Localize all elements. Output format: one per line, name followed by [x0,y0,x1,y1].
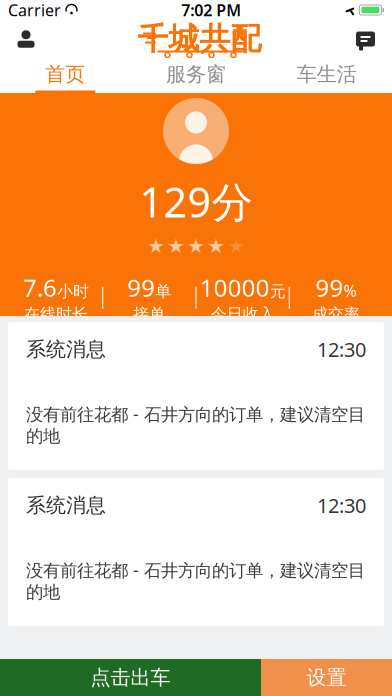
staticText: ★ [167,235,185,257]
staticText: 单 [155,282,171,301]
staticText: % [343,280,356,301]
staticText: 系统消息 [26,493,106,518]
button[interactable]: 首页 [0,58,131,93]
staticText: 成交率 [312,304,360,324]
staticText: 今日收入 [211,304,275,324]
staticText: ★ [147,235,165,257]
staticText: 129分 [139,174,252,229]
staticText: 12:30 [317,492,366,519]
staticText: ★ [187,235,205,257]
staticText: 设置 [306,665,346,690]
staticText: 首页 [45,62,85,87]
staticText: 12:30 [317,336,366,363]
staticText: 服务窗 [166,62,226,87]
staticText: 元 [270,282,286,301]
button[interactable]: 系统消息 [8,478,384,626]
button[interactable]: Messages [343,20,388,58]
staticText: 小时 [57,282,89,301]
staticText: 没有前往花都 - 石井方向的订单，建议清空目的地 [26,559,365,603]
staticText: 系统消息 [26,337,106,362]
button[interactable]: Profile [4,20,48,58]
staticText: 车生活 [297,62,357,87]
staticText: ★ [227,235,245,257]
staticText: 接单 [133,304,165,324]
button[interactable]: 车生活 [261,58,392,93]
staticText: 没有前往花都 - 石井方向的订单，建议清空目的地 [26,403,365,447]
staticText: Carrier [8,0,61,21]
button[interactable]: 点击出车 [0,659,261,696]
staticText: 千城共配 [137,20,261,58]
staticText: 点击出车 [90,665,170,690]
button[interactable]: 服务窗 [131,58,261,93]
staticText: 在线时长 [24,304,88,324]
staticText: 7:02 PM [181,0,241,21]
staticText: 7.6 [23,271,57,303]
staticText: ★ [207,235,225,257]
staticText: 10000 [200,271,270,303]
button[interactable]: 系统消息 [8,322,384,470]
staticText: 99 [315,271,343,303]
button[interactable]: 设置 [261,659,392,696]
staticText: 99 [127,271,155,303]
